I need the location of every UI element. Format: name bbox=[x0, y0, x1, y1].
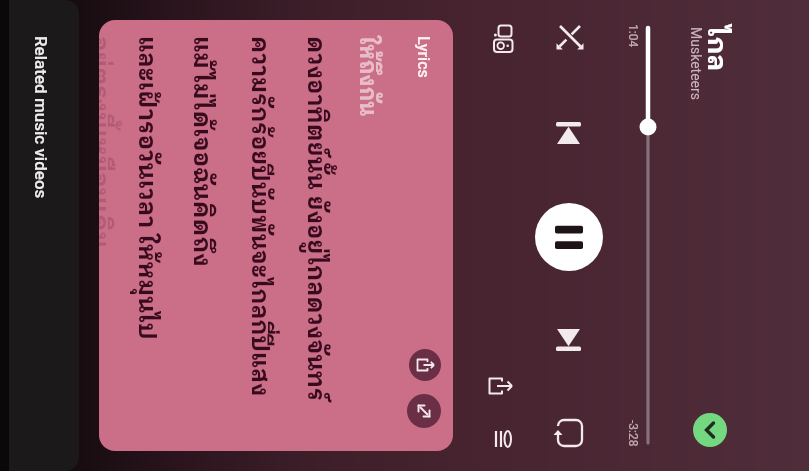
staticText: Lyrics bbox=[414, 36, 433, 78]
button[interactable] bbox=[407, 394, 441, 428]
staticText: Related music videos bbox=[31, 36, 51, 199]
staticText: ให้ถึงกัน bbox=[347, 36, 387, 117]
staticText: ไกล bbox=[694, 26, 737, 72]
button[interactable] bbox=[483, 419, 523, 459]
staticText: -3:28 bbox=[626, 420, 640, 447]
button[interactable]: Lyrics bbox=[99, 20, 453, 451]
staticText: 1:04 bbox=[626, 24, 640, 48]
staticText: ดวงอาทิตย์นั้น ยังอยู่ไกลดวงจันทร์ bbox=[295, 36, 335, 401]
button[interactable] bbox=[549, 320, 589, 360]
button[interactable]: Related music videos bbox=[0, 0, 79, 471]
staticText: อยู่ตรงนี้เหมือนเดิม bbox=[99, 36, 119, 248]
button[interactable] bbox=[481, 366, 521, 406]
staticText: ความรักร้อยปีนับพันจะไกลกี่ปีแสง bbox=[239, 36, 279, 397]
button[interactable] bbox=[483, 19, 523, 59]
staticText: และเฝ้ารอวันเวลา ให้หมุนไป bbox=[126, 36, 166, 340]
button[interactable] bbox=[549, 113, 589, 153]
button[interactable] bbox=[693, 413, 727, 447]
button[interactable] bbox=[551, 17, 591, 57]
button[interactable] bbox=[535, 203, 603, 271]
button[interactable] bbox=[409, 349, 441, 381]
staticText: แม้ไม่ได้เจอฉันคิดถึง bbox=[181, 36, 221, 267]
button[interactable] bbox=[551, 413, 591, 453]
staticText: Musketeers bbox=[688, 27, 704, 100]
